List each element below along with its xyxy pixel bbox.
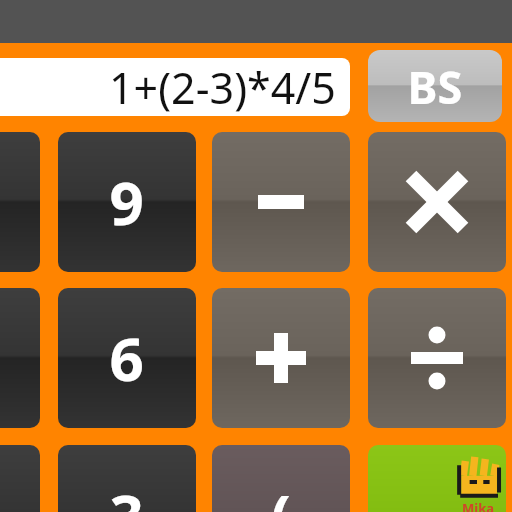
button[interactable]: Backspace [368, 50, 502, 122]
button[interactable]: Expression display [0, 58, 350, 116]
button[interactable]: 8 [0, 132, 40, 272]
button[interactable]: 3 [58, 445, 196, 512]
button[interactable]: 6 [58, 288, 196, 428]
button[interactable]: Plus [212, 288, 350, 428]
button[interactable]: Open parenthesis [212, 445, 350, 512]
button[interactable]: 5 [0, 288, 40, 428]
button[interactable]: Mika [368, 445, 506, 512]
button[interactable]: 2 [0, 445, 40, 512]
button[interactable]: Multiply [368, 132, 506, 272]
button[interactable]: Divide [368, 288, 506, 428]
button[interactable]: 9 [58, 132, 196, 272]
button[interactable]: Minus [212, 132, 350, 272]
